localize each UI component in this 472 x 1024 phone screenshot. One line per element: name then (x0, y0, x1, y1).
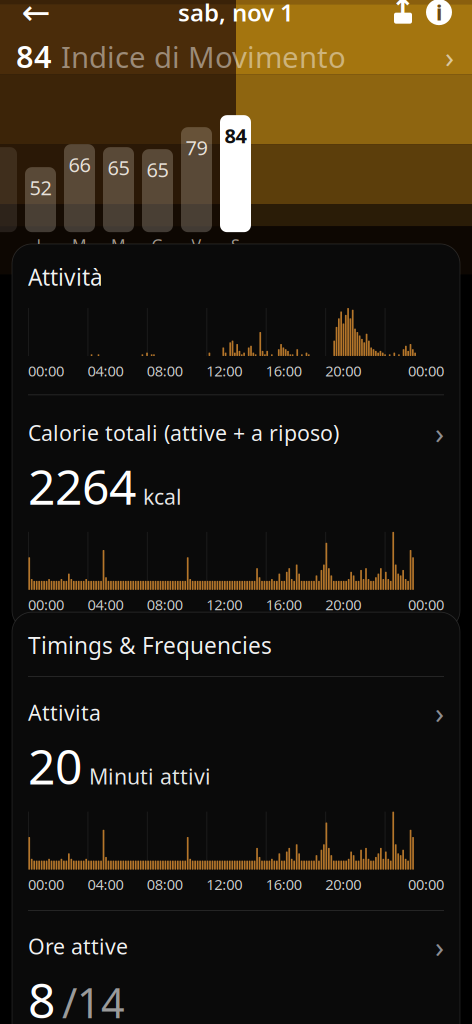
staticText: Minuti attivi (89, 762, 211, 790)
staticText: › (435, 693, 444, 732)
staticText: Attivita (28, 698, 101, 727)
staticText: 2264 (28, 454, 136, 518)
staticText: G (151, 234, 163, 256)
staticText: 04:00 (87, 875, 123, 894)
staticText: 20:00 (325, 875, 361, 894)
staticText: 00:00 (408, 875, 444, 894)
staticText: 00:00 (28, 361, 64, 380)
staticText: Ore attive (28, 932, 128, 960)
staticText: 04:00 (87, 361, 123, 380)
staticText: 84 (224, 122, 246, 149)
staticText: V (191, 234, 201, 256)
staticText: 65 (107, 154, 129, 181)
staticText: M (111, 234, 126, 256)
staticText: S (231, 234, 240, 256)
staticText: › (435, 927, 444, 966)
staticText: 79 (185, 134, 207, 161)
staticText: 65 (146, 156, 168, 183)
staticText: M (72, 234, 87, 256)
staticText: 16:00 (266, 875, 302, 894)
staticText: 20:00 (325, 361, 361, 380)
staticText: 00:00 (28, 875, 64, 894)
staticText: 12:00 (206, 595, 242, 614)
staticText: i (436, 0, 442, 26)
button[interactable]: Ore attive (28, 927, 444, 1024)
staticText: /14 (62, 975, 125, 1024)
button[interactable]: 84 (0, 36, 472, 76)
staticText: ↑ (390, 0, 415, 26)
button[interactable]: Back (14, 0, 58, 34)
staticText: 52 (29, 174, 51, 201)
staticText: 20 (28, 734, 82, 798)
staticText: Timings & Frequencies (28, 630, 272, 660)
staticText: 08:00 (147, 361, 183, 380)
staticText: 66 (68, 151, 90, 178)
staticText: 12:00 (206, 361, 242, 380)
staticText: ← (21, 0, 50, 32)
staticText: L (36, 234, 44, 256)
staticText: 00:00 (408, 361, 444, 380)
staticText: 08:00 (147, 595, 183, 614)
staticText: 16:00 (266, 595, 302, 614)
button[interactable]: Share (386, 0, 420, 29)
button[interactable]: Information (420, 0, 458, 31)
staticText: 8 (28, 968, 55, 1024)
staticText: 16:00 (266, 361, 302, 380)
staticText: 08:00 (147, 875, 183, 894)
staticText: 12:00 (206, 875, 242, 894)
staticText: 00:00 (408, 595, 444, 614)
staticText: kcal (143, 482, 182, 510)
button[interactable]: Calorie totali (attive + a riposo) (28, 413, 444, 614)
staticText: Attività (28, 262, 103, 292)
staticText: Calorie totali (attive + a riposo) (28, 418, 339, 447)
staticText: 20:00 (325, 595, 361, 614)
staticText: Indice di Movimento (61, 37, 346, 76)
button[interactable]: Attivita (28, 693, 444, 894)
staticText: › (435, 413, 444, 452)
staticText: 00:00 (28, 595, 64, 614)
staticText: 04:00 (87, 595, 123, 614)
staticText: › (445, 37, 454, 76)
staticText: sab, nov 1 (178, 0, 294, 28)
staticText: 84 (16, 36, 52, 76)
